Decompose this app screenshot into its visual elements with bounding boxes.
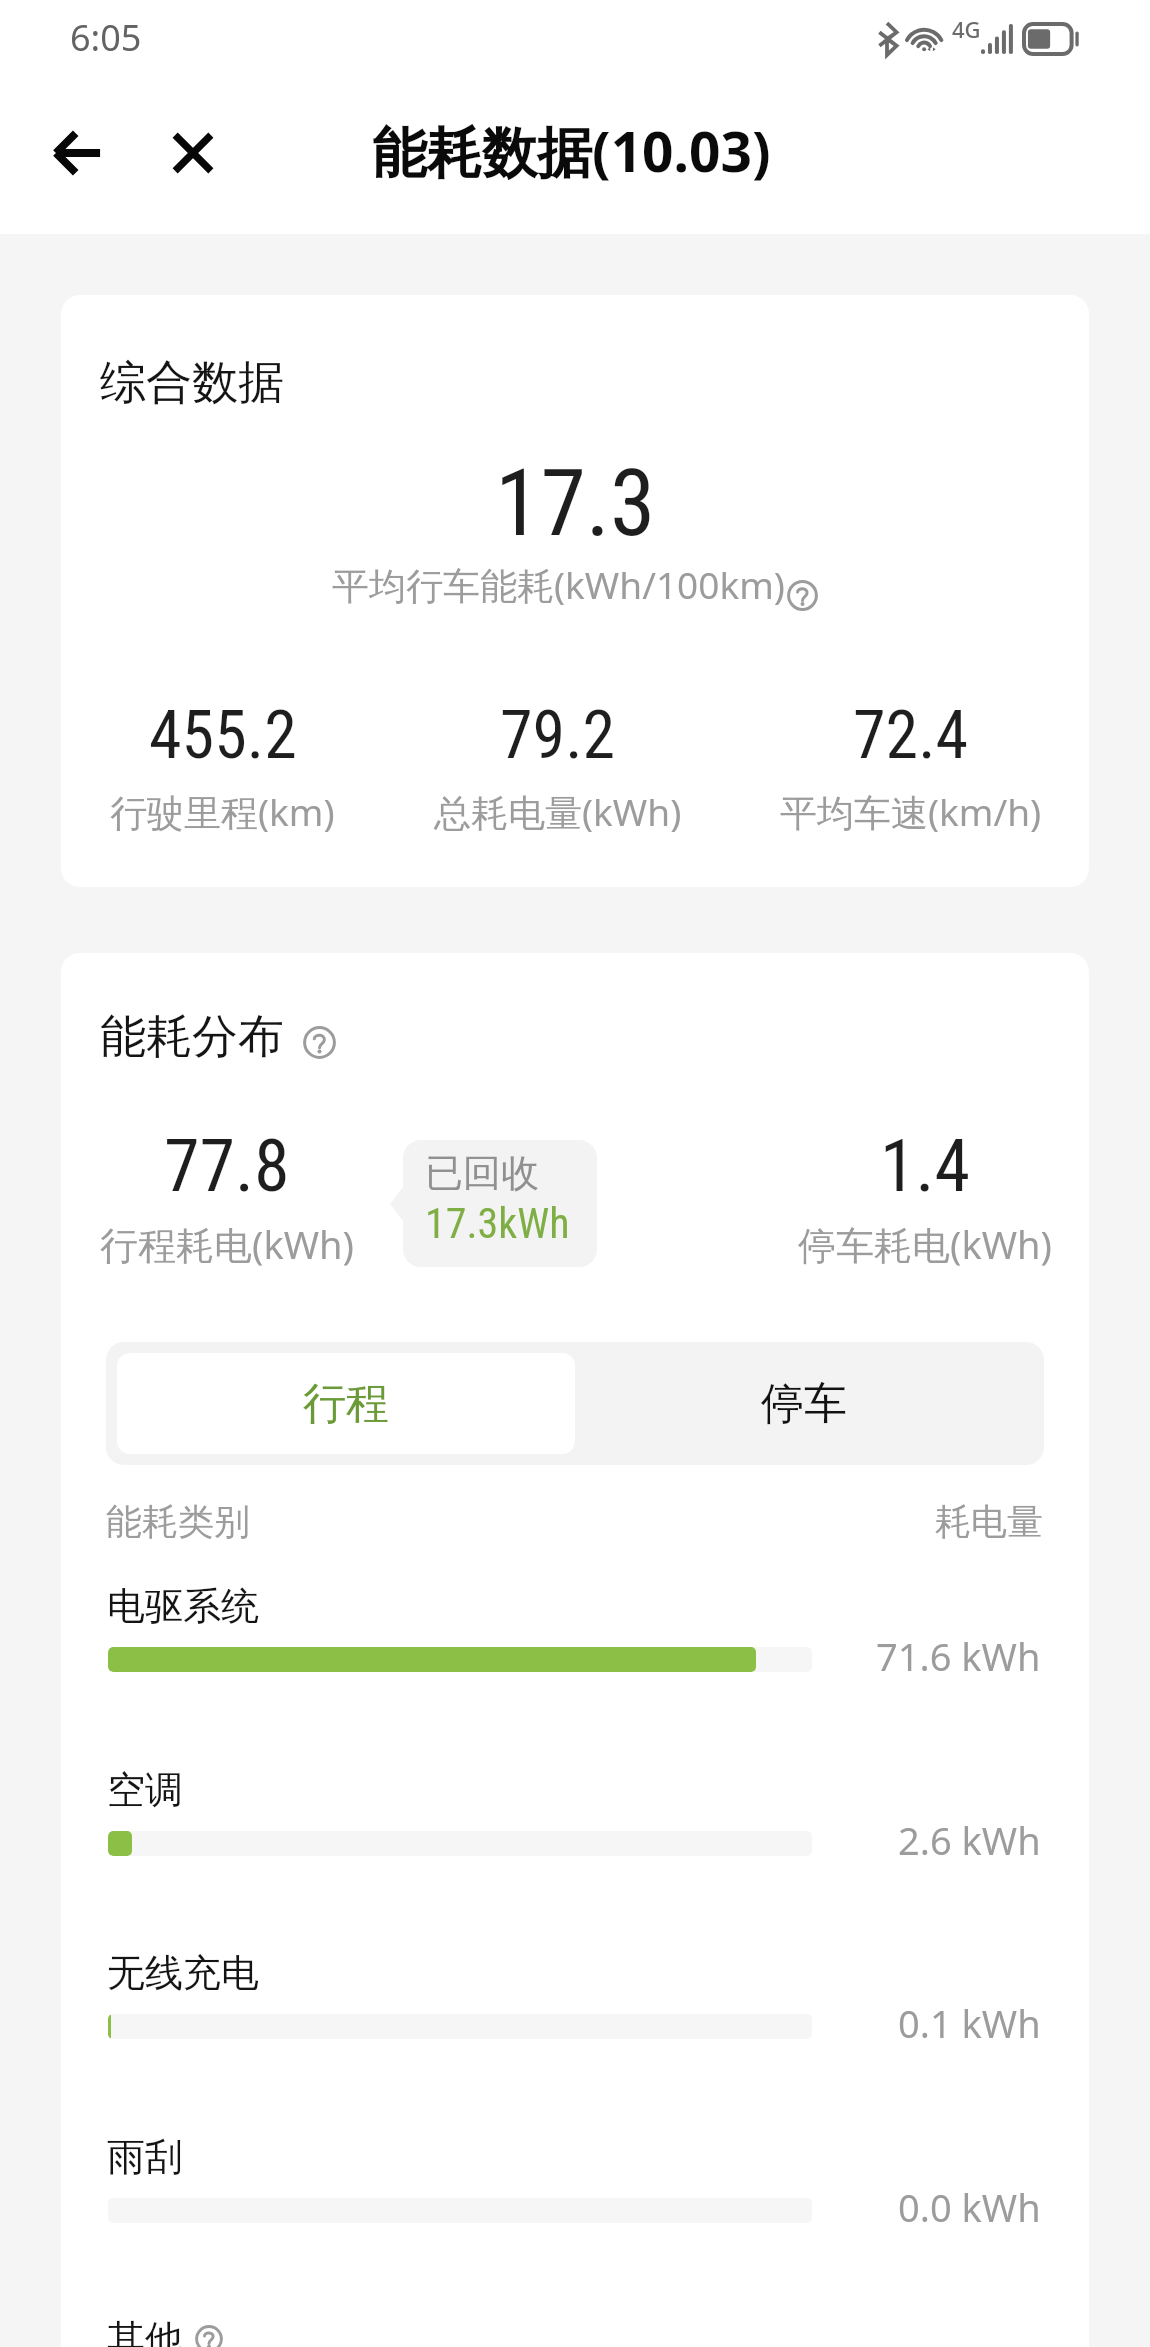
staticText: 无线充电 (107, 1949, 259, 1997)
staticText: 平均行车能耗(kWh/100km) (332, 559, 785, 610)
staticText: 总耗电量(kWh) (434, 786, 682, 837)
button[interactable]: 无线充电 (61, 1949, 1089, 2099)
staticText: 空调 (107, 1766, 183, 1814)
staticText: 17.3 (495, 450, 656, 558)
staticText: 雨刮 (107, 2133, 183, 2181)
staticText: 6:05 (70, 13, 142, 62)
button[interactable]: 行程 (117, 1353, 575, 1454)
button[interactable]: Back (33, 114, 117, 198)
staticText: 4G (952, 14, 981, 44)
button[interactable]: More information (195, 2325, 223, 2347)
staticText: 17.3kWh (425, 1199, 570, 1248)
staticText: 行程 (303, 1377, 389, 1431)
staticText: 其他 (107, 2315, 183, 2347)
staticText: 行程耗电(kWh) (100, 1218, 354, 1270)
staticText: 72.4 (853, 697, 969, 774)
staticText: 1.4 (880, 1124, 971, 1208)
staticText: 电驱系统 (107, 1582, 259, 1630)
staticText: 平均车速(km/h) (780, 786, 1042, 837)
staticText: 455.2 (149, 697, 297, 774)
staticText: 2.6 kWh (898, 1814, 1041, 1866)
button[interactable]: More information (303, 1026, 336, 1059)
staticText: 79.2 (500, 697, 616, 774)
staticText: 能耗类别 (106, 1499, 250, 1544)
staticText: 能耗数据(10.03) (372, 113, 771, 188)
button[interactable]: Close (150, 114, 234, 198)
button[interactable]: 雨刮 (61, 2133, 1089, 2283)
staticText: 耗电量 (935, 1499, 1043, 1544)
button[interactable]: More information (787, 580, 818, 611)
staticText: 0.1 kWh (898, 1997, 1041, 2049)
staticText: 已回收 (425, 1149, 539, 1197)
staticText: 行驶里程(km) (110, 786, 335, 837)
button[interactable]: 电驱系统 (61, 1582, 1089, 1732)
staticText: 停车耗电(kWh) (798, 1218, 1052, 1270)
staticText: 77.8 (164, 1124, 290, 1208)
button[interactable]: 空调 (61, 1766, 1089, 1916)
staticText: 综合数据 (100, 354, 284, 412)
staticText: 0.0 kWh (898, 2181, 1041, 2233)
staticText: 停车 (761, 1377, 847, 1431)
staticText: 71.6 kWh (876, 1630, 1041, 1682)
staticText: 能耗分布 (100, 1008, 284, 1066)
button[interactable]: 停车 (575, 1353, 1033, 1454)
